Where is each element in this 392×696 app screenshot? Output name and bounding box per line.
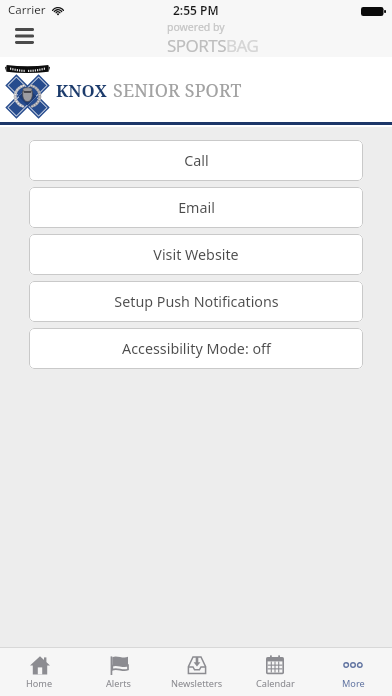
staticText: SPORTS bbox=[167, 34, 226, 57]
button[interactable]: Visit Website bbox=[29, 234, 363, 275]
button[interactable]: More bbox=[314, 648, 392, 696]
staticText: Accessibility Mode: off bbox=[122, 339, 271, 358]
button[interactable]: Home bbox=[0, 648, 79, 696]
staticText: Email bbox=[178, 198, 215, 217]
button[interactable]: Setup Push Notifications bbox=[29, 281, 363, 322]
staticText: Home bbox=[26, 677, 53, 690]
staticText: BAG bbox=[226, 34, 259, 57]
staticText: SENIOR SPORT bbox=[113, 78, 242, 102]
staticText: 2:55 PM bbox=[173, 2, 219, 18]
staticText: Call bbox=[184, 151, 209, 170]
staticText: More bbox=[342, 677, 365, 690]
staticText: Setup Push Notifications bbox=[114, 292, 279, 311]
button[interactable]: Call bbox=[29, 140, 363, 181]
staticText: Alerts bbox=[106, 677, 131, 690]
staticText: Visit Website bbox=[153, 245, 239, 264]
button[interactable]: Newsletters bbox=[158, 648, 236, 696]
staticText: KNOX bbox=[56, 79, 107, 102]
button[interactable]: Accessibility Mode: off bbox=[29, 328, 363, 369]
button[interactable]: Open navigation menu bbox=[3, 19, 45, 53]
staticText: Carrier bbox=[8, 2, 46, 18]
staticText: Newsletters bbox=[171, 677, 223, 690]
staticText: Calendar bbox=[256, 677, 295, 690]
button[interactable]: Calendar bbox=[236, 648, 314, 696]
staticText: powered by bbox=[167, 20, 225, 34]
button[interactable]: Alerts bbox=[79, 648, 158, 696]
button[interactable]: Email bbox=[29, 187, 363, 228]
